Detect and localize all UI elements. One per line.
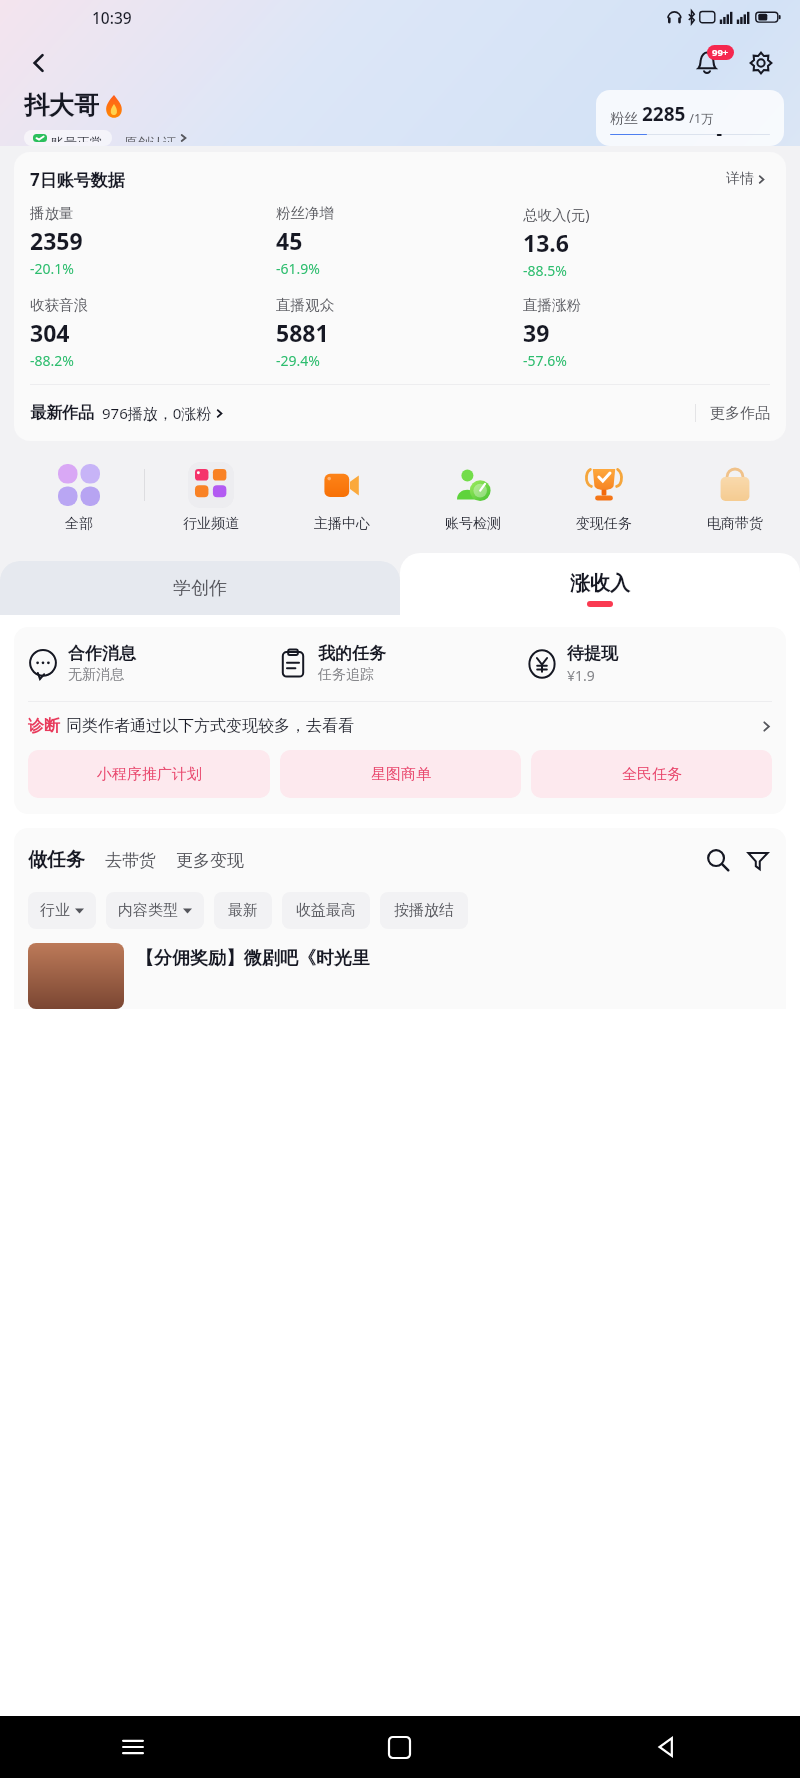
button[interactable]: 内容类型	[106, 892, 204, 929]
staticText: ¥1.9	[567, 666, 595, 685]
button[interactable]: 合作消息	[26, 643, 276, 684]
staticText: 抖大哥	[24, 90, 99, 121]
staticText: 行业	[40, 901, 70, 920]
button[interactable]: 小程序推广计划	[28, 750, 270, 798]
staticText: 【分佣奖励】微剧吧《时光里	[136, 947, 370, 970]
staticText: 最新作品	[30, 403, 94, 423]
button[interactable]: 账号检测	[407, 455, 538, 537]
staticText: 原创认证	[124, 134, 176, 142]
button[interactable]: 总收入(元)	[523, 204, 770, 280]
staticText: 收获音浪	[30, 296, 88, 314]
button[interactable]: 学创作	[0, 561, 400, 615]
staticText: 直播涨粉	[523, 296, 581, 314]
staticText: -20.1%	[30, 259, 74, 278]
staticText: 976播放，0涨粉	[102, 403, 212, 423]
staticText: 304	[30, 317, 70, 348]
button[interactable]: 更多变现	[176, 850, 244, 871]
button[interactable]: 主播中心	[276, 455, 407, 537]
button[interactable]: 最新	[214, 892, 272, 929]
button[interactable]: 账号正常	[24, 130, 112, 146]
button[interactable]: 按播放结	[380, 892, 468, 929]
staticText: -61.9%	[276, 259, 320, 278]
staticText: 10:39	[92, 7, 132, 28]
staticText: 99+	[712, 46, 729, 59]
button[interactable]: 全部	[14, 455, 144, 537]
button[interactable]: 电商带货	[669, 455, 800, 537]
staticText: 2359	[30, 225, 83, 256]
button[interactable]: Notifications	[684, 40, 730, 86]
staticText: 粉丝净增	[276, 204, 334, 222]
staticText: 按播放结	[394, 901, 454, 920]
button[interactable]: 做任务	[28, 848, 85, 872]
staticText: 收益最高	[296, 901, 356, 920]
button[interactable]: 星图商单	[280, 750, 521, 798]
staticText: 最新	[228, 901, 258, 920]
staticText: 39	[523, 317, 550, 348]
button[interactable]: 收益最高	[282, 892, 370, 929]
staticText: 合作消息	[68, 643, 136, 664]
button[interactable]: 粉丝	[596, 90, 784, 146]
button[interactable]: 全民任务	[531, 750, 772, 798]
staticText: /1万	[686, 110, 714, 127]
button[interactable]: 更多作品	[696, 404, 770, 423]
button[interactable]: 直播涨粉	[523, 296, 770, 370]
staticText: 待提现	[567, 643, 618, 664]
button[interactable]: Back	[533, 1716, 800, 1778]
staticText: -57.6%	[523, 351, 567, 370]
staticText: 内容类型	[118, 901, 178, 920]
staticText: 2285	[642, 101, 686, 127]
staticText: 行业频道	[183, 515, 239, 533]
button[interactable]: 待提现	[525, 643, 774, 685]
button[interactable]: Filter	[740, 842, 776, 878]
staticText: 全民任务	[622, 765, 682, 784]
staticText: 小程序推广计划	[97, 765, 202, 784]
button[interactable]: 原创认证	[124, 130, 188, 146]
button[interactable]: Settings	[738, 40, 784, 86]
staticText: 涨收入	[570, 571, 630, 596]
button[interactable]: 行业	[28, 892, 96, 929]
button[interactable]: 直播观众	[276, 296, 523, 370]
staticText: 主播中心	[314, 515, 370, 533]
button[interactable]: 涨收入	[400, 553, 800, 615]
staticText: 13.6	[523, 227, 569, 258]
staticText: 播放量	[30, 204, 74, 222]
button[interactable]: 行业频道	[145, 455, 276, 537]
button[interactable]: 最新作品	[30, 403, 695, 423]
staticText: 总收入(元)	[523, 204, 590, 224]
button[interactable]: 收获音浪	[30, 296, 276, 370]
button[interactable]: 诊断	[14, 702, 786, 750]
staticText: 账号检测	[445, 515, 501, 533]
staticText: 学创作	[173, 577, 227, 600]
button[interactable]: 去带货	[105, 850, 156, 871]
button[interactable]: Recents	[0, 1716, 266, 1778]
button[interactable]: 播放量	[30, 204, 276, 278]
staticText: 账号正常	[51, 134, 103, 142]
staticText: -88.5%	[523, 261, 567, 280]
staticText: 全部	[65, 515, 93, 533]
staticText: 无新消息	[68, 666, 124, 684]
staticText: 更多作品	[710, 404, 770, 423]
button[interactable]: 详情	[722, 166, 770, 192]
button[interactable]: Back	[16, 40, 62, 86]
staticText: 45	[276, 225, 303, 256]
staticText: 详情	[726, 170, 754, 188]
staticText: 任务追踪	[318, 666, 374, 684]
staticText: -29.4%	[276, 351, 320, 370]
staticText: -88.2%	[30, 351, 74, 370]
staticText: 直播观众	[276, 296, 334, 314]
button[interactable]: Search	[700, 842, 736, 878]
staticText: 电商带货	[707, 515, 763, 533]
staticText: 我的任务	[318, 643, 386, 664]
staticText: 7日账号数据	[30, 168, 125, 191]
staticText: 同类作者通过以下方式变现较多，去看看	[66, 716, 354, 736]
staticText: 5881	[276, 317, 329, 348]
button[interactable]: 我的任务	[276, 643, 525, 684]
button[interactable]: Home	[266, 1716, 533, 1778]
staticText: 粉丝	[610, 108, 642, 127]
staticText: 星图商单	[371, 765, 431, 784]
staticText: 变现任务	[576, 515, 632, 533]
button[interactable]: 粉丝净增	[276, 204, 523, 278]
button[interactable]: 变现任务	[538, 455, 669, 537]
staticText: 诊断	[28, 716, 60, 736]
